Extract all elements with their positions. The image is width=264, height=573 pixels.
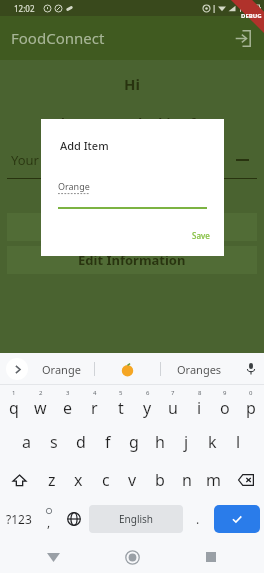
button[interactable]: Orange	[28, 353, 94, 385]
staticText: ,	[47, 514, 51, 530]
button[interactable]: Oranges	[161, 353, 238, 385]
staticText: 3	[66, 389, 70, 397]
staticText: x	[74, 469, 83, 491]
button[interactable]: 0	[238, 385, 264, 423]
staticText: 1	[12, 389, 16, 397]
staticText: l	[236, 431, 241, 453]
staticText: 0	[249, 389, 253, 397]
staticText: p	[246, 397, 256, 419]
button[interactable]: Home	[117, 542, 147, 572]
button[interactable]: 3	[54, 385, 81, 423]
staticText: 4	[93, 389, 97, 397]
button[interactable]: j	[173, 423, 199, 461]
staticText: i	[197, 397, 202, 419]
button[interactable]: Orange emoji suggestion	[95, 353, 160, 385]
button[interactable]: 1	[0, 385, 27, 423]
button[interactable]: n	[173, 461, 200, 499]
staticText: 5	[119, 389, 123, 397]
staticText: r	[91, 397, 98, 419]
button[interactable]: Save!	[7, 213, 257, 241]
staticText: .	[196, 511, 200, 527]
staticText: Hi	[0, 74, 264, 94]
button[interactable]: .	[186, 499, 210, 539]
staticText: u	[168, 397, 178, 419]
staticText: What are you looking for?	[0, 114, 264, 132]
button[interactable]: s	[40, 423, 67, 461]
button[interactable]: 5	[108, 385, 134, 423]
staticText: n	[182, 469, 192, 491]
button[interactable]: z	[38, 461, 65, 499]
staticText: y	[143, 397, 152, 419]
staticText: DEBUG	[241, 12, 262, 20]
staticText: q	[9, 397, 19, 419]
staticText: t	[118, 397, 124, 419]
staticText: v	[128, 469, 137, 491]
staticText: h	[155, 431, 165, 453]
staticText: b	[155, 469, 165, 491]
button[interactable]: h	[147, 423, 173, 461]
staticText: Orange	[42, 362, 81, 377]
button[interactable]: More suggestions	[6, 358, 28, 380]
staticText: Orange	[58, 180, 90, 192]
staticText: Oranges	[177, 362, 222, 377]
staticText: k	[208, 431, 217, 453]
button[interactable]: Voice input	[238, 353, 264, 385]
button[interactable]: Remove item	[231, 149, 253, 171]
staticText: c	[102, 469, 110, 491]
staticText: Save	[192, 230, 210, 241]
button[interactable]: Recent apps	[196, 542, 226, 572]
staticText: s	[50, 431, 58, 453]
button[interactable]: ?123	[0, 499, 37, 539]
button[interactable]: Comma, emoji	[37, 499, 61, 539]
staticText: g	[129, 431, 139, 453]
staticText: English	[119, 512, 154, 526]
staticText: 10	[238, 3, 248, 14]
staticText: 8	[198, 389, 202, 397]
staticText: 2	[39, 389, 43, 397]
staticText: Add Item	[60, 138, 109, 153]
button[interactable]: f	[94, 423, 121, 461]
staticText: f	[105, 431, 111, 453]
staticText: w	[34, 397, 47, 419]
staticText: a	[22, 431, 31, 453]
button[interactable]: 9	[212, 385, 238, 423]
button[interactable]: English	[89, 505, 183, 533]
staticText: Edit Information	[78, 251, 186, 269]
button[interactable]: Enter	[214, 505, 260, 533]
button[interactable]: g	[121, 423, 147, 461]
button[interactable]: Save	[187, 227, 215, 244]
button[interactable]: b	[146, 461, 173, 499]
button[interactable]: l	[225, 423, 251, 461]
staticText: m	[206, 469, 221, 491]
button[interactable]: a	[13, 423, 40, 461]
button[interactable]: 8	[186, 385, 212, 423]
button[interactable]: c	[92, 461, 119, 499]
staticText: j	[184, 431, 189, 453]
button[interactable]: Edit Information	[7, 246, 257, 274]
staticText: 6	[146, 389, 150, 397]
staticText: 12:02	[14, 3, 35, 14]
button[interactable]: Change language	[61, 499, 86, 539]
staticText: ?123	[6, 511, 32, 527]
button[interactable]: m	[200, 461, 227, 499]
button[interactable]: 7	[160, 385, 186, 423]
button[interactable]: k	[199, 423, 225, 461]
staticText: o	[220, 397, 230, 419]
button[interactable]: x	[65, 461, 92, 499]
button[interactable]: 4	[81, 385, 108, 423]
staticText: Your List	[11, 151, 64, 169]
staticText: z	[48, 469, 56, 491]
button[interactable]: Log out	[227, 23, 257, 53]
button[interactable]: Shift	[0, 461, 38, 499]
button[interactable]: 2	[27, 385, 54, 423]
staticText: e	[63, 397, 73, 419]
button[interactable]: 6	[134, 385, 160, 423]
staticText: 7	[171, 389, 175, 397]
button[interactable]: Backspace	[227, 461, 264, 499]
button[interactable]: v	[119, 461, 146, 499]
staticText: FoodConnect	[11, 28, 105, 48]
button[interactable]: Back	[38, 542, 68, 572]
staticText: d	[76, 431, 86, 453]
button[interactable]: d	[67, 423, 94, 461]
